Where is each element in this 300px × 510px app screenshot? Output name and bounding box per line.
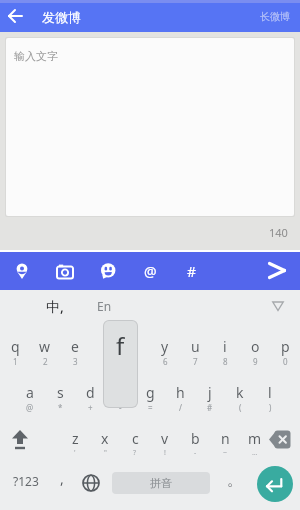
staticText: = (148, 402, 153, 412)
staticText: k (236, 383, 244, 402)
staticText: t (132, 337, 138, 356)
staticText: ) (269, 402, 272, 412)
button[interactable]: # (176, 255, 208, 287)
button[interactable]: w (30, 335, 60, 357)
staticText: w (39, 337, 51, 356)
button[interactable]: j (195, 381, 225, 403)
staticText: u (191, 337, 200, 356)
staticText: y (161, 337, 169, 356)
button[interactable]: n (210, 427, 240, 449)
button[interactable]: g (135, 381, 165, 403)
button[interactable] (49, 255, 81, 287)
button[interactable]: o (240, 335, 270, 357)
button[interactable]: a (15, 381, 45, 403)
button[interactable]: 。 (220, 466, 248, 494)
button[interactable]: z (60, 427, 90, 449)
button[interactable] (92, 255, 124, 287)
button[interactable]: 长微博 (252, 0, 298, 32)
button[interactable] (262, 290, 294, 322)
staticText: e (71, 337, 79, 356)
staticText: 5 (133, 356, 138, 367)
staticText: n (221, 429, 230, 448)
button[interactable]: @ (134, 255, 166, 287)
staticText: En (97, 298, 112, 314)
staticText: " (104, 448, 107, 456)
staticText: 4 (103, 356, 108, 367)
staticText: 140 (269, 225, 288, 240)
staticText: 0 (283, 356, 288, 367)
button[interactable]: s (45, 381, 75, 403)
staticText: j (208, 383, 212, 402)
button[interactable]: u (180, 335, 210, 357)
button[interactable] (262, 422, 298, 458)
button[interactable]: h (165, 381, 195, 403)
button[interactable]: En (84, 290, 124, 322)
button[interactable] (0, 422, 40, 458)
staticText: s (57, 383, 64, 402)
button[interactable]: v (150, 427, 180, 449)
button[interactable] (259, 253, 295, 289)
button[interactable]: 拼音 (112, 472, 210, 494)
button[interactable] (76, 468, 106, 498)
button[interactable]: l (255, 381, 285, 403)
staticText: , (60, 469, 64, 488)
staticText: 中, (46, 297, 64, 316)
button[interactable]: e (60, 335, 90, 357)
staticText: i (223, 337, 227, 356)
staticText: @ (26, 402, 34, 412)
staticText: h (176, 383, 185, 402)
staticText: 8 (223, 356, 228, 367)
staticText: g (146, 383, 155, 402)
staticText: 9 (253, 356, 258, 367)
button[interactable]: b (180, 427, 210, 449)
button[interactable] (6, 255, 38, 287)
staticText: 6 (163, 356, 168, 367)
staticText: # (187, 262, 197, 281)
staticText: # (207, 402, 213, 412)
staticText: ~ (223, 448, 228, 456)
staticText: c (132, 429, 139, 448)
button[interactable]: 中, (35, 290, 75, 322)
staticText: ! (164, 448, 166, 456)
button[interactable]: y (150, 335, 180, 357)
button[interactable]: k (225, 381, 255, 403)
button[interactable]: t (120, 335, 150, 357)
staticText: ( (239, 402, 242, 412)
staticText: v (161, 429, 169, 448)
button[interactable] (257, 466, 293, 502)
staticText: f (116, 329, 125, 361)
staticText: 7 (193, 356, 198, 367)
button[interactable]: x (90, 427, 120, 449)
button[interactable]: 输入文字 (6, 38, 294, 216)
button[interactable]: , (48, 466, 76, 490)
staticText: 发微博 (42, 9, 81, 25)
staticText: 1 (13, 356, 18, 367)
staticText: x (101, 429, 109, 448)
button[interactable]: q (0, 335, 30, 357)
button[interactable]: r (90, 335, 120, 357)
staticText: 长微博 (260, 10, 290, 23)
button[interactable]: d (75, 381, 105, 403)
button[interactable]: i (210, 335, 240, 357)
staticText: ?123 (13, 473, 39, 489)
staticText: ' (74, 448, 76, 456)
staticText: 2 (43, 356, 48, 367)
staticText: 拼音 (150, 476, 172, 490)
button[interactable]: c (120, 427, 150, 449)
staticText: l (268, 383, 272, 402)
staticText: q (11, 337, 20, 356)
staticText: o (251, 337, 260, 356)
staticText: a (26, 383, 34, 402)
button[interactable]: p (270, 335, 300, 357)
staticText: / (179, 402, 182, 412)
staticText: ? (133, 448, 137, 456)
staticText: 输入文字 (14, 49, 58, 63)
button[interactable]: ?123 (4, 468, 48, 494)
staticText: + (88, 402, 93, 412)
button[interactable]: m (240, 427, 270, 449)
staticText: d (86, 383, 95, 402)
staticText: 。 (227, 471, 242, 490)
button[interactable] (0, 0, 32, 32)
